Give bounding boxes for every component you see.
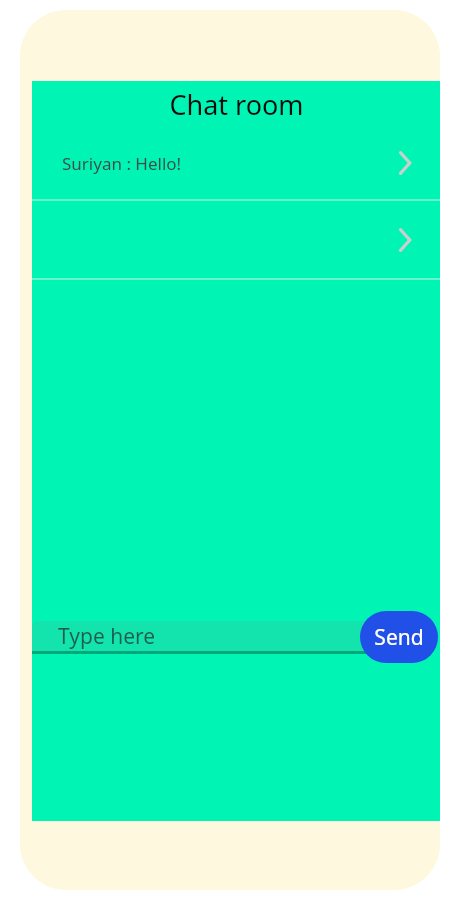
other: Open conversation xyxy=(397,150,413,176)
button[interactable]: Send xyxy=(360,611,438,663)
other: Open conversation xyxy=(397,227,413,253)
button[interactable]: Open conversation xyxy=(32,201,440,278)
button[interactable]: Suriyan : Hello! xyxy=(32,127,440,199)
button[interactable]: Type here xyxy=(32,621,392,654)
staticText: Send xyxy=(374,623,424,652)
staticText: Suriyan : Hello! xyxy=(62,152,182,175)
staticText: Type here xyxy=(58,622,156,651)
staticText: Chat room xyxy=(169,86,304,123)
